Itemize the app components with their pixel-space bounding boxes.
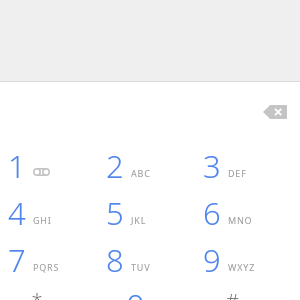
staticText: ABC (131, 167, 151, 179)
button[interactable]: # (183, 283, 278, 300)
button[interactable]: 7 (0, 236, 83, 283)
button[interactable]: 9 (183, 236, 278, 283)
staticText: 1 (8, 145, 26, 187)
staticText: 8 (106, 239, 124, 281)
button[interactable]: * (0, 283, 83, 300)
staticText: 5 (106, 192, 124, 234)
button[interactable]: 1 (0, 142, 83, 189)
staticText: TUV (131, 261, 151, 273)
staticText: GHI (33, 214, 52, 226)
staticText: 7 (8, 239, 26, 281)
staticText: * (31, 287, 43, 300)
staticText: PQRS (33, 261, 60, 273)
staticText: 4 (8, 192, 26, 234)
staticText: 3 (203, 145, 221, 187)
button[interactable]: 3 (183, 142, 278, 189)
staticText: 9 (203, 239, 221, 281)
staticText: 6 (203, 192, 221, 234)
staticText: 0 (126, 283, 145, 300)
button[interactable]: 6 (183, 189, 278, 236)
button[interactable]: 5 (86, 189, 181, 236)
staticText: 2 (106, 145, 124, 187)
staticText: JKL (131, 214, 147, 226)
button[interactable]: 8 (86, 236, 181, 283)
button[interactable]: Delete (258, 99, 292, 124)
button[interactable]: 0 (86, 283, 181, 300)
button[interactable]: 2 (86, 142, 181, 189)
staticText: # (226, 287, 239, 300)
staticText: MNO (228, 214, 253, 226)
staticText: WXYZ (228, 261, 256, 273)
button[interactable]: 4 (0, 189, 83, 236)
staticText: DEF (228, 167, 247, 179)
